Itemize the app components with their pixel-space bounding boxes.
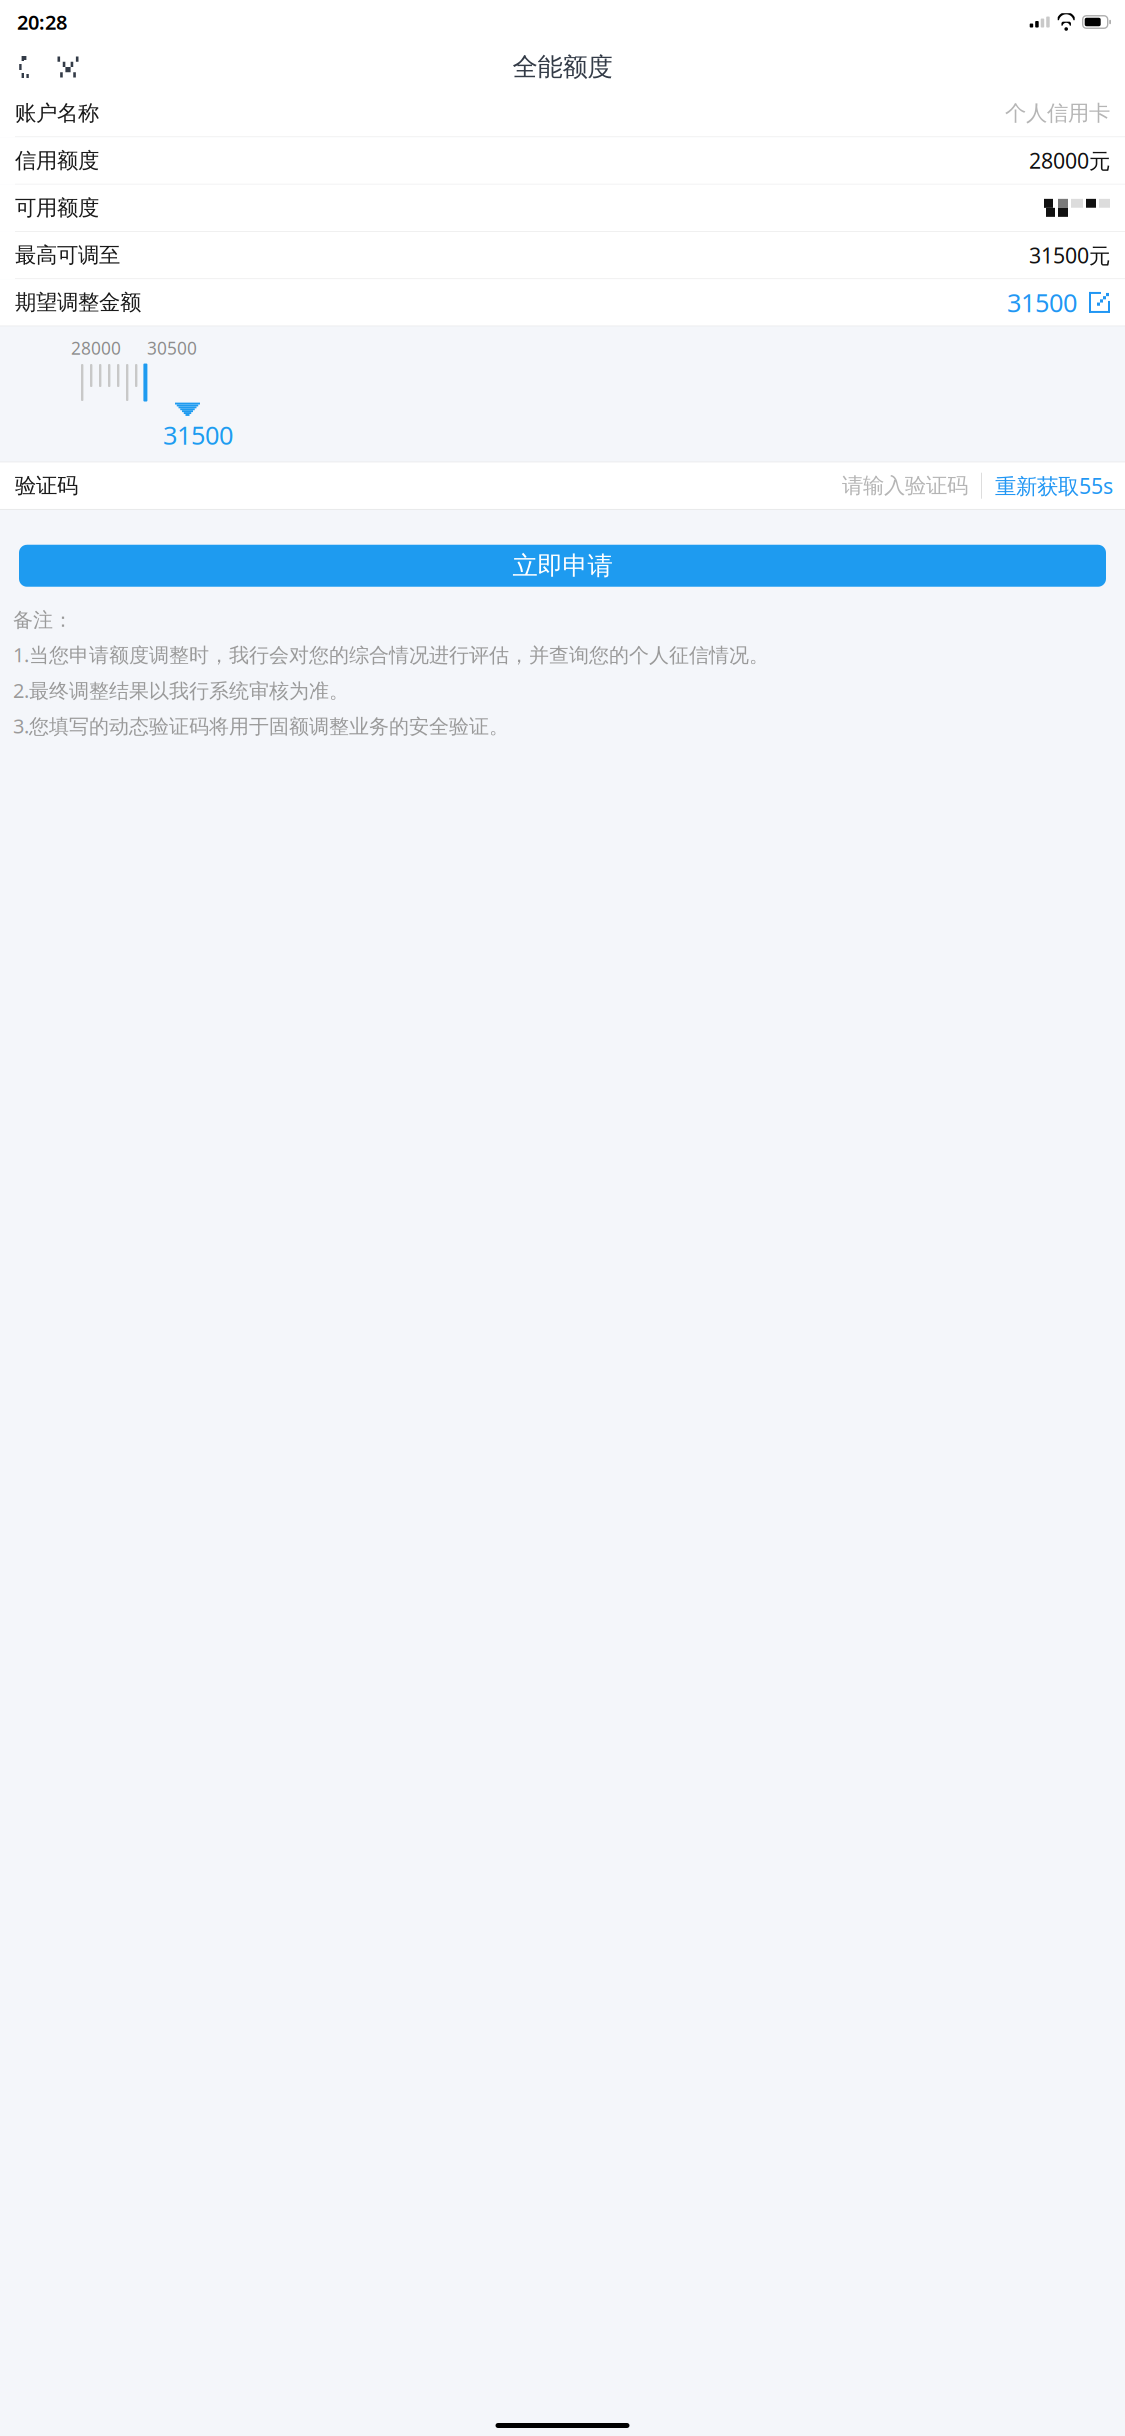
button[interactable]: 关闭 (46, 44, 90, 90)
staticText: 31500元 (1029, 241, 1110, 269)
staticText: 31500 (163, 418, 233, 452)
staticText: 20:28 (17, 9, 67, 35)
staticText: 30500 (147, 336, 197, 359)
staticText: 31500 (1007, 286, 1077, 319)
staticText: 最高可调至 (15, 242, 120, 268)
button[interactable]: 期望调整金额 (0, 279, 1125, 326)
staticText: 验证码 (15, 473, 78, 499)
staticText: 立即申请 (512, 550, 612, 581)
staticText: 全能额度 (512, 51, 612, 82)
staticText: 28000 (71, 336, 121, 359)
button[interactable]: 立即申请 (19, 545, 1106, 587)
staticText: 可用额度 (15, 195, 99, 221)
staticText: 个人信用卡 (1005, 100, 1110, 126)
staticText: 28000元 (1029, 146, 1110, 175)
button[interactable]: 返回 (2, 44, 46, 90)
staticText: 备注： (13, 608, 73, 632)
staticText: 1.当您申请额度调整时，我行会对您的综合情况进行评估，并查询您的个人征信情况。 (13, 641, 769, 668)
staticText: 账户名称 (15, 100, 99, 126)
staticText: 重新获取55s (995, 471, 1113, 500)
button[interactable]: 重新获取55s (995, 471, 1113, 500)
staticText: 3.您填写的动态验证码将用于固额调整业务的安全验证。 (13, 712, 509, 739)
staticText: 请输入验证码 (842, 473, 968, 499)
staticText: 2.最终调整结果以我行系统审核为准。 (13, 677, 349, 703)
staticText: 信用额度 (15, 147, 99, 174)
staticText: 期望调整金额 (15, 289, 141, 315)
